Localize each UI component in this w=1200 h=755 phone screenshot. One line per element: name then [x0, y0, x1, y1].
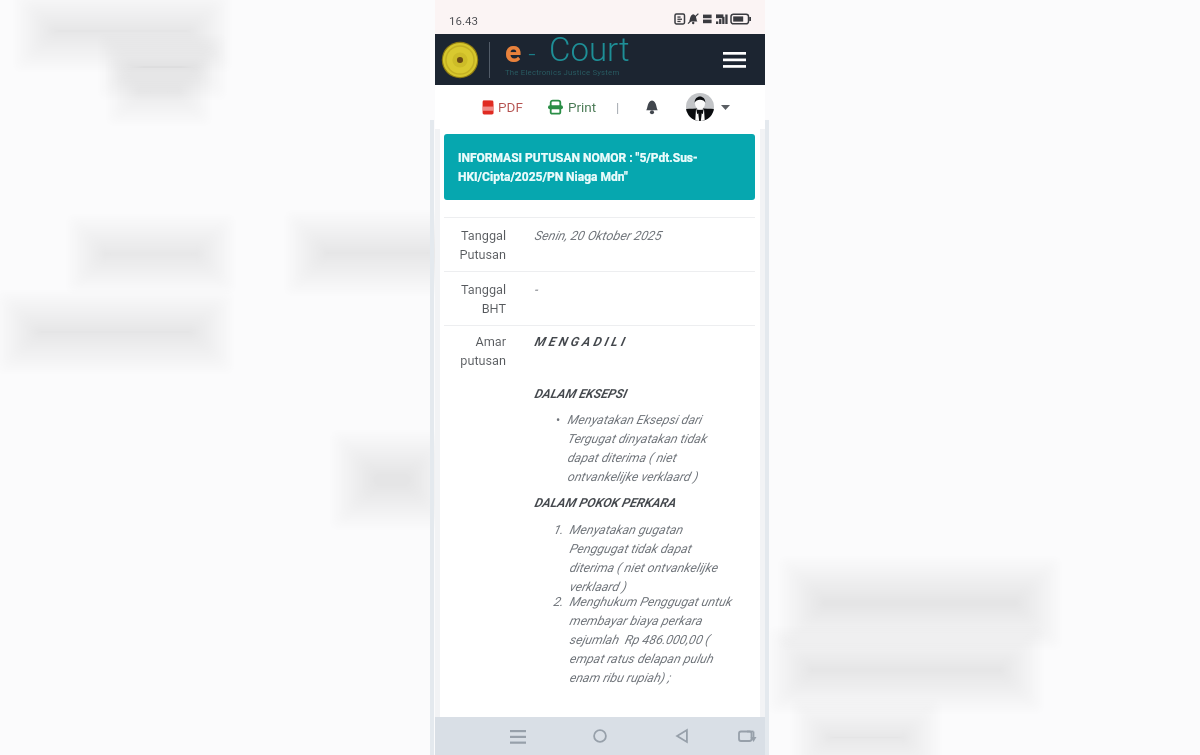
button[interactable]: Profile menu: [686, 93, 730, 121]
staticText: Tanggal BHT: [444, 282, 506, 316]
button[interactable]: PDF: [479, 92, 526, 122]
staticText: 16.43: [449, 14, 478, 27]
button[interactable]: Home: [580, 717, 620, 755]
button[interactable]: Print: [545, 92, 600, 122]
button[interactable]: Recent apps: [498, 717, 538, 755]
staticText: The Electronics Justice System: [505, 68, 620, 77]
staticText: |: [616, 100, 620, 115]
staticText: Senin, 20 Oktober 2025: [534, 228, 661, 243]
staticText: Menyatakan gugatan Penggugat tidak dapat…: [569, 522, 718, 594]
staticText: Tanggal Putusan: [444, 228, 506, 262]
button[interactable]: Back: [662, 717, 702, 755]
staticText: M E N G A D I L I: [534, 334, 624, 349]
staticText: DALAM POKOK PERKARA: [534, 495, 676, 510]
staticText: Amar putusan: [444, 334, 506, 368]
staticText: DALAM EKSEPSI: [534, 386, 627, 401]
staticText: -: [522, 39, 549, 69]
button[interactable]: Switch app: [727, 717, 767, 755]
staticText: e: [505, 34, 522, 69]
button[interactable]: Notifications: [641, 95, 663, 119]
staticText: Menyatakan Eksepsi dari Tergugat dinyata…: [567, 412, 707, 484]
staticText: 1.: [553, 522, 564, 537]
staticText: Court: [549, 30, 630, 69]
staticText: INFORMASI PUTUSAN NOMOR : "5/Pdt.Sus- HK…: [458, 151, 698, 184]
button[interactable]: Menu: [716, 42, 752, 78]
staticText: Print: [568, 99, 597, 115]
staticText: PDF: [498, 99, 523, 115]
staticText: 2.: [553, 594, 564, 609]
staticText: -: [534, 282, 538, 297]
staticText: •: [556, 412, 561, 427]
staticText: Menghukum Penggugat untuk membayar biaya…: [569, 594, 732, 685]
